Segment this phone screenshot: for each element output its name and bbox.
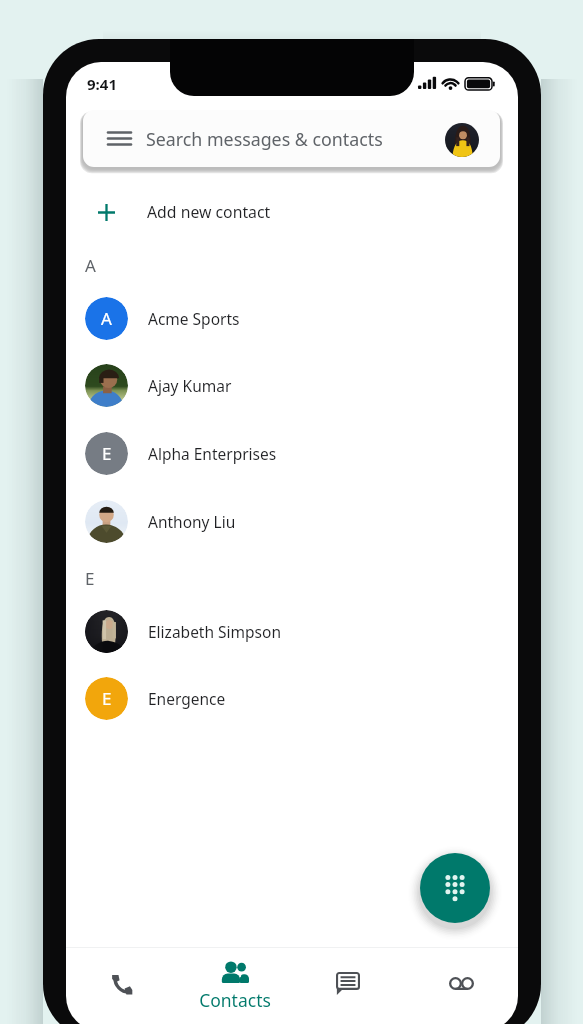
staticText: Anthony Liu — [148, 511, 236, 532]
button[interactable]: Voicemail — [405, 945, 517, 1021]
staticText: A — [85, 254, 96, 276]
button[interactable]: Add new contact — [66, 184, 518, 240]
staticText: E — [85, 567, 95, 589]
button[interactable]: Dialpad — [420, 853, 490, 923]
staticText: Alpha Enterprises — [148, 443, 277, 464]
staticText: Search messages & contacts — [146, 127, 383, 151]
button[interactable]: Anthony Liu — [66, 488, 518, 554]
staticText: Ajay Kumar — [148, 375, 232, 396]
staticText: 9:41 — [87, 74, 117, 94]
staticText: Acme Sports — [148, 308, 240, 329]
staticText: E — [102, 687, 112, 710]
staticText: A — [101, 307, 112, 330]
staticText: Energence — [148, 688, 226, 709]
button[interactable]: Messages — [292, 945, 404, 1021]
button[interactable]: A — [66, 285, 518, 351]
button[interactable]: E — [66, 665, 518, 731]
staticText: Contacts — [199, 988, 271, 1012]
button[interactable]: Elizabeth Simpson — [66, 598, 518, 664]
button[interactable]: Search messages & contacts — [83, 110, 500, 167]
staticText: Add new contact — [147, 201, 271, 223]
button[interactable]: E — [66, 420, 518, 486]
button[interactable]: Recents — [66, 945, 178, 1021]
button[interactable]: Ajay Kumar — [66, 352, 518, 418]
button[interactable]: Contacts — [179, 947, 291, 1023]
staticText: Elizabeth Simpson — [148, 621, 281, 642]
staticText: E — [102, 442, 112, 465]
